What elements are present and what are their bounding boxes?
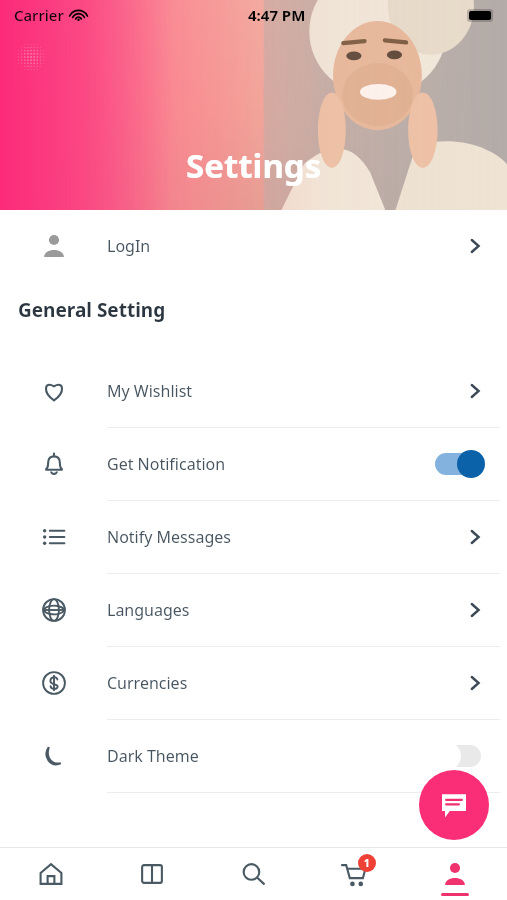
button[interactable]: Home (0, 847, 101, 900)
staticText: Currencies (107, 672, 465, 694)
button[interactable]: Search (202, 847, 303, 900)
button[interactable]: Profile (404, 847, 505, 900)
button[interactable]: Languages (0, 574, 507, 646)
button[interactable]: Notify Messages (0, 501, 507, 573)
button[interactable]: LogIn (0, 210, 507, 282)
button[interactable]: Currencies (0, 647, 507, 719)
staticText: Settings (186, 143, 322, 188)
staticText: 4:47 PM (248, 5, 306, 25)
button[interactable]: Catalog (101, 847, 202, 900)
staticText: Carrier (14, 5, 64, 25)
staticText: My Wishlist (107, 380, 465, 402)
staticText: Languages (107, 599, 465, 621)
button[interactable]: Dark Theme (0, 720, 507, 792)
button[interactable]: Chat (419, 770, 489, 840)
button[interactable] (433, 449, 485, 479)
staticText: 1 (364, 856, 370, 870)
button[interactable]: My Wishlist (0, 355, 507, 427)
staticText: Dark Theme (107, 745, 433, 767)
staticText: Get Notification (107, 453, 433, 475)
button[interactable]: Cart (303, 847, 404, 900)
button[interactable]: Get Notification (0, 428, 507, 500)
staticText: Notify Messages (107, 526, 465, 548)
staticText: General Setting (18, 297, 166, 323)
button[interactable] (433, 741, 485, 771)
staticText: LogIn (107, 235, 465, 257)
